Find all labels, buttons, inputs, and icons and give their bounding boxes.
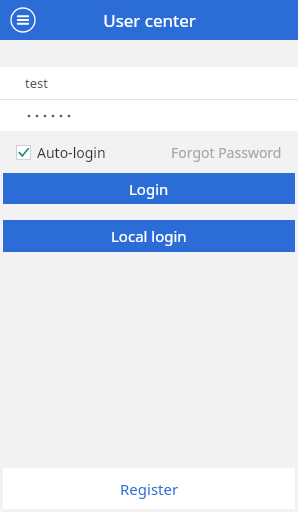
staticText: User center [103,9,196,32]
staticText: Forgot Password [171,143,282,162]
button[interactable]: Auto-login [16,139,106,166]
staticText: Register [120,479,179,499]
button[interactable] [0,100,298,131]
button[interactable]: Local login [3,220,295,252]
button[interactable]: Forgot Password [167,137,286,168]
staticText: Auto-login [37,143,106,162]
button[interactable]: Login [3,173,295,204]
button[interactable]: Register [3,468,295,509]
button[interactable]: test [0,67,298,99]
button[interactable]: Open navigation menu [8,5,38,35]
staticText: Login [129,179,169,199]
staticText: Local login [111,226,187,246]
staticText: test [25,74,48,92]
